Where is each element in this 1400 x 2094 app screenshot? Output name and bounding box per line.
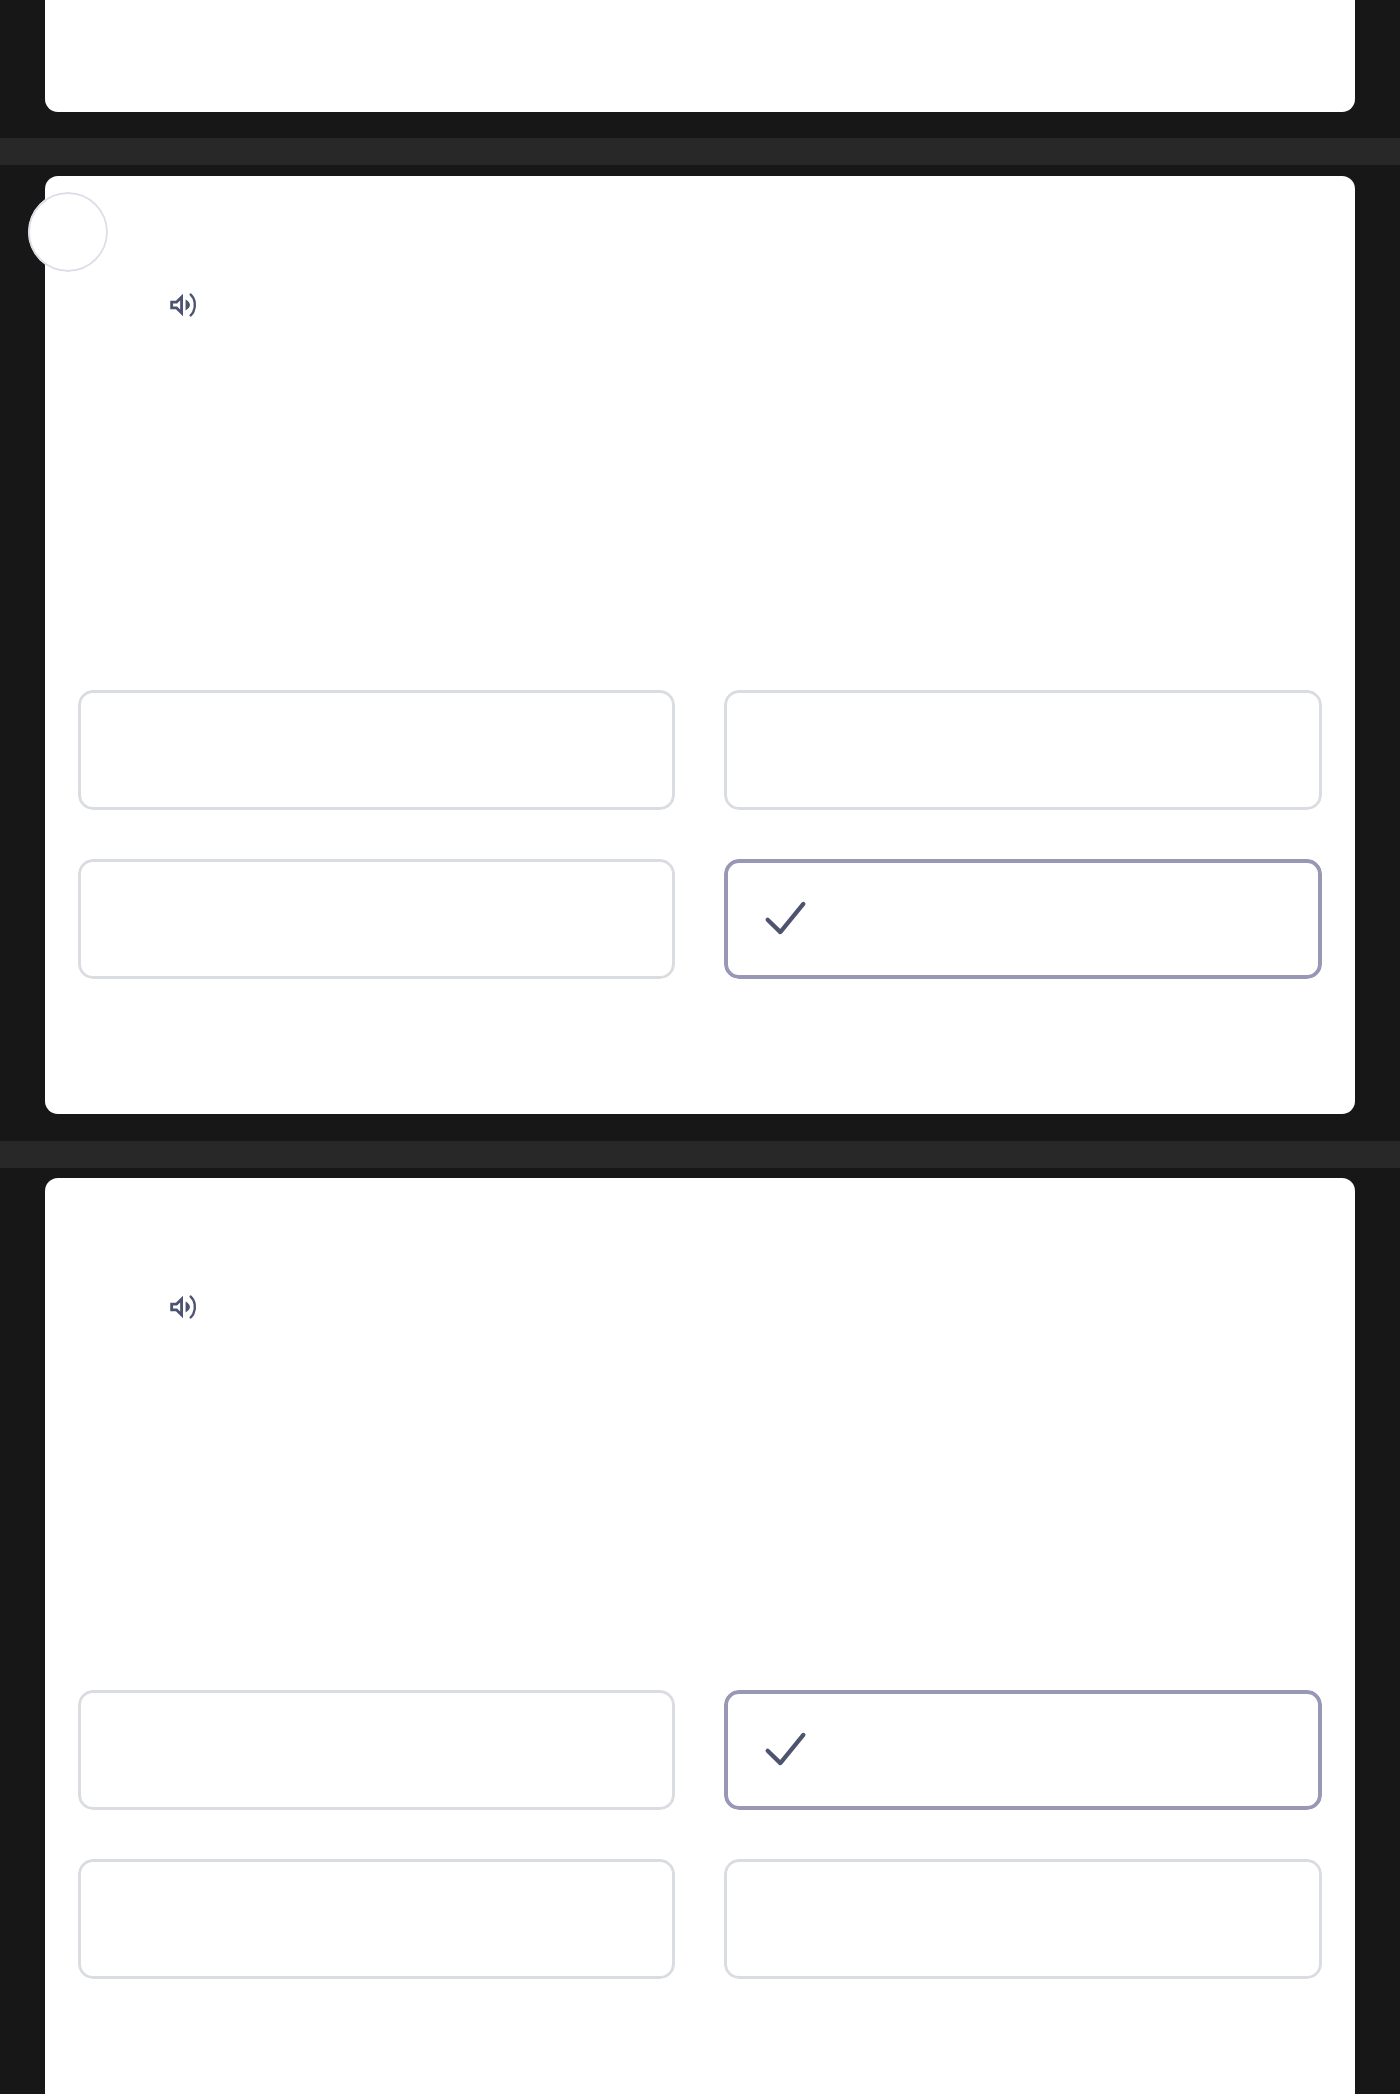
- button[interactable]: Question progress: [45, 176, 1355, 1114]
- button[interactable]: Answer option: [724, 1859, 1322, 1979]
- button[interactable]: Answer option: [78, 859, 675, 979]
- button[interactable]: Answer option: [78, 1690, 675, 1810]
- button[interactable]: Play audio: [45, 1178, 1355, 2094]
- button[interactable]: Question progress: [28, 192, 108, 272]
- button[interactable]: Play audio: [45, 0, 1355, 112]
- button[interactable]: Play audio: [166, 1290, 200, 1324]
- button[interactable]: Chosen answer: [724, 1690, 1322, 1810]
- button[interactable]: Answer option: [724, 690, 1322, 810]
- button[interactable]: Answer option: [78, 690, 675, 810]
- button[interactable]: Chosen answer: [724, 859, 1322, 979]
- button[interactable]: Answer option: [78, 1859, 675, 1979]
- button[interactable]: Play audio: [166, 288, 200, 322]
